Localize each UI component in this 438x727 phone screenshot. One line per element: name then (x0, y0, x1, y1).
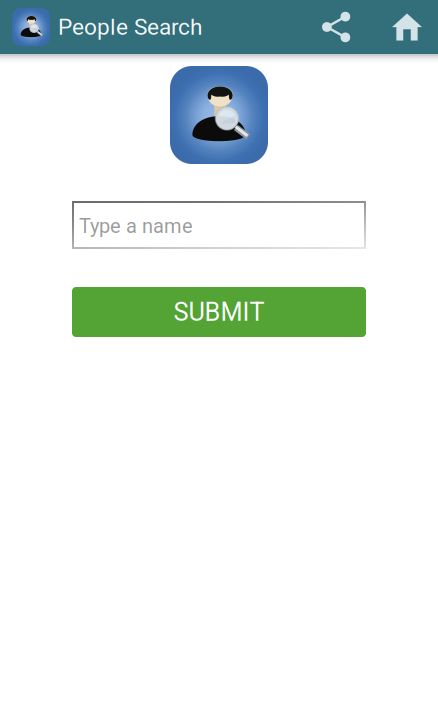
button[interactable]: Share (292, 0, 380, 54)
staticText: SUBMIT (173, 297, 264, 327)
button[interactable]: SUBMIT (72, 287, 366, 337)
button[interactable]: Home (380, 0, 434, 54)
button[interactable]: App (0, 8, 58, 46)
staticText: People Search (58, 14, 202, 40)
button[interactable]: People Search (58, 0, 202, 54)
staticText: Type a name (79, 214, 193, 238)
